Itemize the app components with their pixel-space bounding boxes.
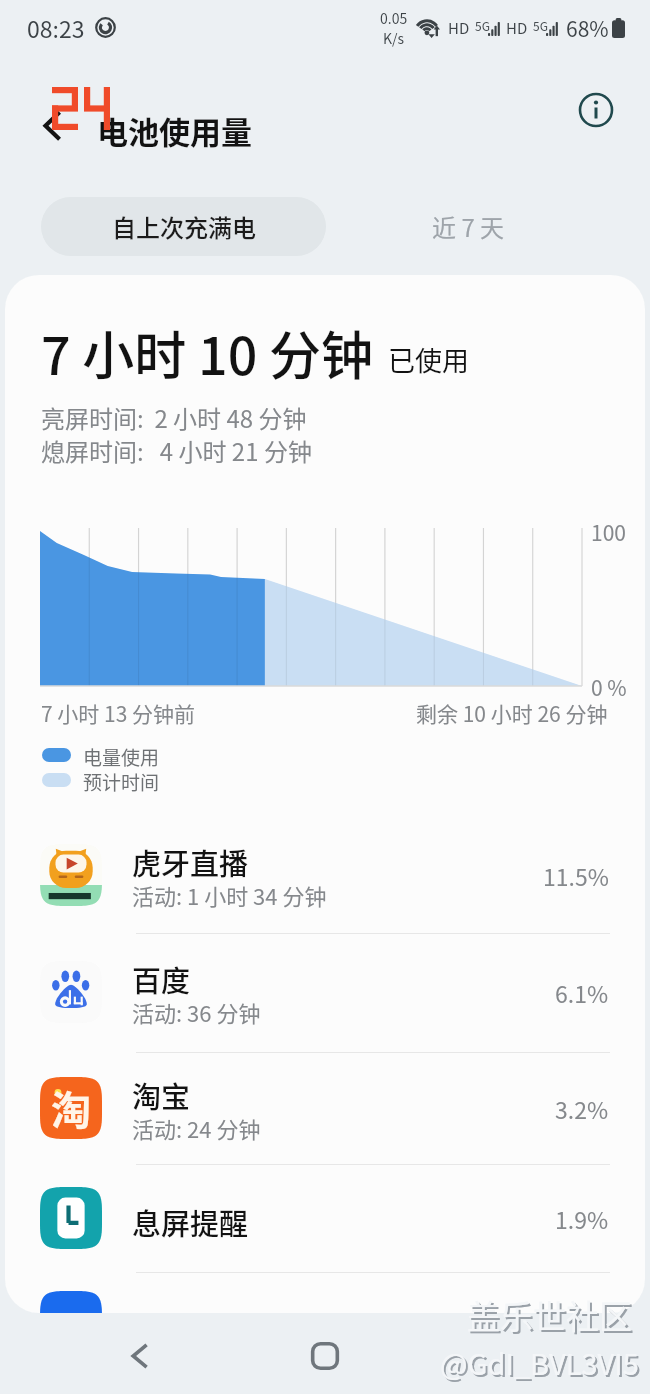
button[interactable]: 息屏提醒 — [5, 1164, 640, 1272]
staticText: 3.2% — [555, 1092, 609, 1125]
button[interactable]: 虎牙直播 — [5, 818, 640, 933]
staticText: 熄屏时间: 4 小时 21 分钟 — [41, 433, 312, 468]
staticText: 自上次充满电 — [112, 209, 256, 244]
staticText: 68% — [566, 13, 609, 43]
button[interactable]: 美乐世社区 — [5, 1272, 640, 1313]
staticText: 100 — [591, 517, 626, 547]
staticText: 活动: 36 分钟 — [132, 996, 261, 1028]
staticText: @GdI_BVL3VI5 — [442, 1343, 641, 1385]
staticText: 淘宝 — [132, 1074, 191, 1116]
button[interactable]: Recent apps — [481, 1328, 537, 1384]
staticText: @GdI_BVL3VI5 — [440, 1341, 639, 1383]
staticText: 百度 — [132, 958, 191, 1000]
staticText: 0 % — [591, 672, 627, 702]
staticText: 电池使用量 — [97, 108, 252, 153]
staticText: 6.1% — [555, 976, 609, 1009]
staticText: 盖乐世社区 — [469, 1293, 634, 1341]
staticText: 电量使用 — [83, 743, 160, 771]
staticText: 0.05 — [380, 8, 408, 28]
button[interactable]: 自上次充满电 — [41, 197, 326, 256]
staticText: 近 7 天 — [432, 209, 505, 244]
staticText: 5G — [533, 17, 548, 34]
staticText: 预计时间 — [83, 768, 160, 796]
button[interactable]: 百度 — [5, 933, 640, 1052]
staticText: 08:23 — [27, 11, 85, 44]
staticText: 1.9% — [555, 1202, 609, 1235]
staticText: 活动: 24 分钟 — [132, 1112, 261, 1144]
staticText: 息屏提醒 — [132, 1201, 249, 1243]
staticText: K/s — [383, 28, 405, 48]
staticText: 7 小时 13 分钟前 — [41, 698, 196, 728]
button[interactable]: Back — [113, 1328, 169, 1384]
staticText: HD — [448, 17, 470, 39]
staticText: 虎牙直播 — [132, 841, 249, 883]
staticText: 淘 — [51, 1079, 91, 1137]
button[interactable]: Information — [572, 86, 620, 134]
button[interactable]: Home — [297, 1328, 353, 1384]
staticText: 亮屏时间: 2 小时 48 分钟 — [41, 400, 307, 435]
button[interactable]: Back — [26, 88, 78, 140]
staticText: HD — [506, 17, 528, 39]
staticText: 剩余 10 小时 26 分钟 — [416, 698, 608, 728]
staticText: 11.5% — [543, 859, 609, 892]
staticText: 盖乐世社区 — [467, 1291, 632, 1339]
button[interactable]: 淘 — [5, 1052, 640, 1164]
staticText: 5G — [475, 17, 490, 34]
button[interactable]: 近 7 天 — [326, 197, 611, 256]
staticText: 已使用 — [388, 340, 469, 379]
staticText: 活动: 1 小时 34 分钟 — [132, 879, 327, 911]
staticText: 7 小时 10 分钟 — [41, 315, 374, 390]
